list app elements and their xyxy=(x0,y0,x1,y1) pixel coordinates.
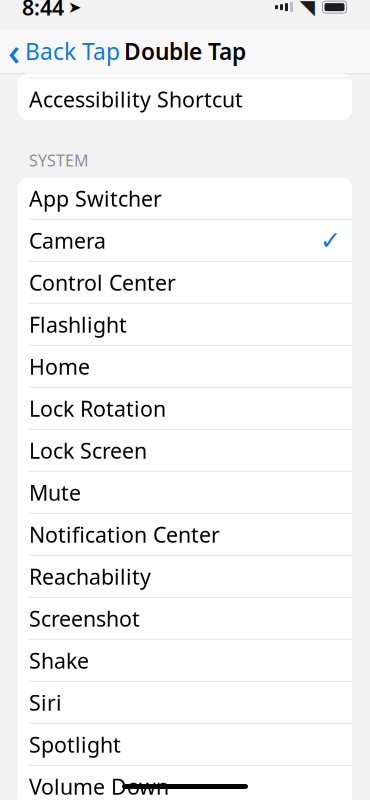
staticText: ✓ xyxy=(320,226,341,255)
staticText: Shake xyxy=(29,646,89,674)
staticText: Mute xyxy=(29,478,81,506)
staticText: App Switcher xyxy=(29,184,162,212)
button[interactable]: Siri xyxy=(18,682,352,724)
button[interactable]: Lock Screen xyxy=(18,430,352,472)
button[interactable]: App Switcher xyxy=(18,178,352,220)
button[interactable]: Notification Center xyxy=(18,514,352,556)
staticText: Flashlight xyxy=(29,310,127,338)
staticText: Double Tap xyxy=(124,36,246,66)
button[interactable]: Volume Down xyxy=(18,766,352,800)
staticText: 8:44 xyxy=(22,0,64,21)
staticText: Lock Screen xyxy=(29,436,147,464)
staticText: Accessibility Shortcut xyxy=(29,85,243,113)
button[interactable]: Home xyxy=(18,346,352,388)
staticText: Lock Rotation xyxy=(29,394,166,422)
button[interactable]: Lock Rotation xyxy=(18,388,352,430)
button[interactable]: Control Center xyxy=(18,262,352,304)
staticText: ➤ xyxy=(68,0,81,16)
button[interactable]: Reachability xyxy=(18,556,352,598)
button[interactable]: Accessibility Shortcut xyxy=(18,79,352,120)
button[interactable]: Screenshot xyxy=(18,598,352,640)
staticText: SYSTEM xyxy=(29,150,89,171)
button[interactable]: Flashlight xyxy=(18,304,352,346)
staticText: Spotlight xyxy=(29,730,121,758)
staticText: Home xyxy=(29,352,90,380)
staticText: Reachability xyxy=(29,562,151,590)
staticText: Siri xyxy=(29,688,62,716)
button[interactable]: ‹ xyxy=(0,29,128,73)
staticText: Volume Down xyxy=(29,772,169,800)
button[interactable]: Camera xyxy=(18,220,352,262)
staticText: Control Center xyxy=(29,268,176,296)
staticText: Screenshot xyxy=(29,604,140,632)
staticText: ‹ xyxy=(8,26,20,76)
button[interactable]: Spotlight xyxy=(18,724,352,766)
staticText: Notification Center xyxy=(29,520,220,548)
staticText: Camera xyxy=(29,226,106,254)
button[interactable]: Shake xyxy=(18,640,352,682)
staticText: Back Tap xyxy=(25,36,120,66)
staticText: ◥ xyxy=(299,0,314,18)
button[interactable]: Mute xyxy=(18,472,352,514)
